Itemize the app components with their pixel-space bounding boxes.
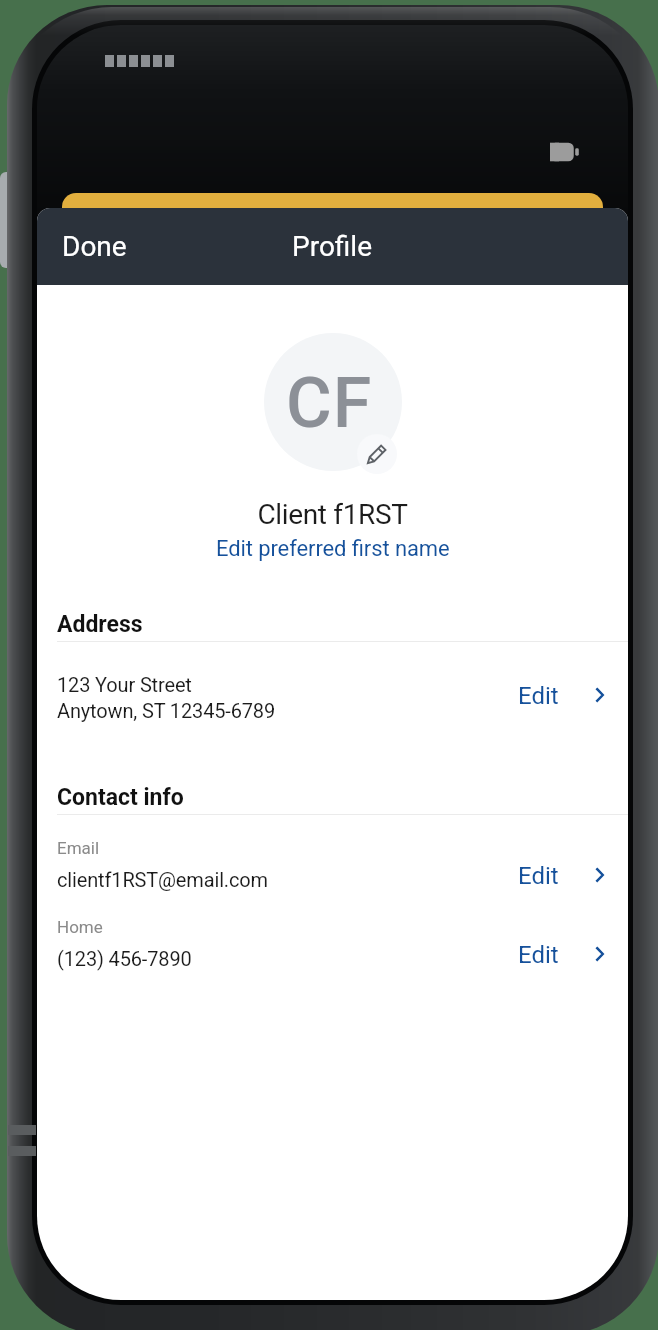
button[interactable]: Edit: [501, 673, 619, 719]
button[interactable]: Home: [37, 911, 628, 976]
button[interactable]: Edit preferred first name: [208, 533, 458, 565]
staticText: 123 Your Street: [57, 673, 192, 696]
staticText: Anytown, ST 12345-6789: [57, 699, 276, 722]
staticText: Edit: [518, 682, 559, 710]
button[interactable]: 123 Your Street: [37, 667, 628, 728]
button[interactable]: Edit: [501, 853, 619, 899]
button[interactable]: Done: [37, 214, 152, 279]
staticText: Edit: [518, 862, 559, 890]
button[interactable]: Edit profile photo: [357, 434, 397, 474]
button[interactable]: Email: [37, 832, 628, 897]
staticText: Edit: [518, 941, 559, 969]
staticText: Email: [57, 838, 100, 858]
staticText: Profile: [292, 230, 373, 263]
staticText: CF: [286, 362, 373, 444]
staticText: Home: [57, 917, 103, 937]
staticText: Address: [57, 611, 143, 638]
button[interactable]: Edit: [501, 932, 619, 978]
staticText: Done: [62, 230, 127, 263]
staticText: Client f1RST: [37, 498, 628, 531]
staticText: (123) 456-7890: [57, 947, 192, 970]
staticText: Contact info: [57, 784, 184, 811]
staticText: clientf1RST@email.com: [57, 868, 268, 891]
staticText: Edit preferred first name: [216, 536, 450, 562]
